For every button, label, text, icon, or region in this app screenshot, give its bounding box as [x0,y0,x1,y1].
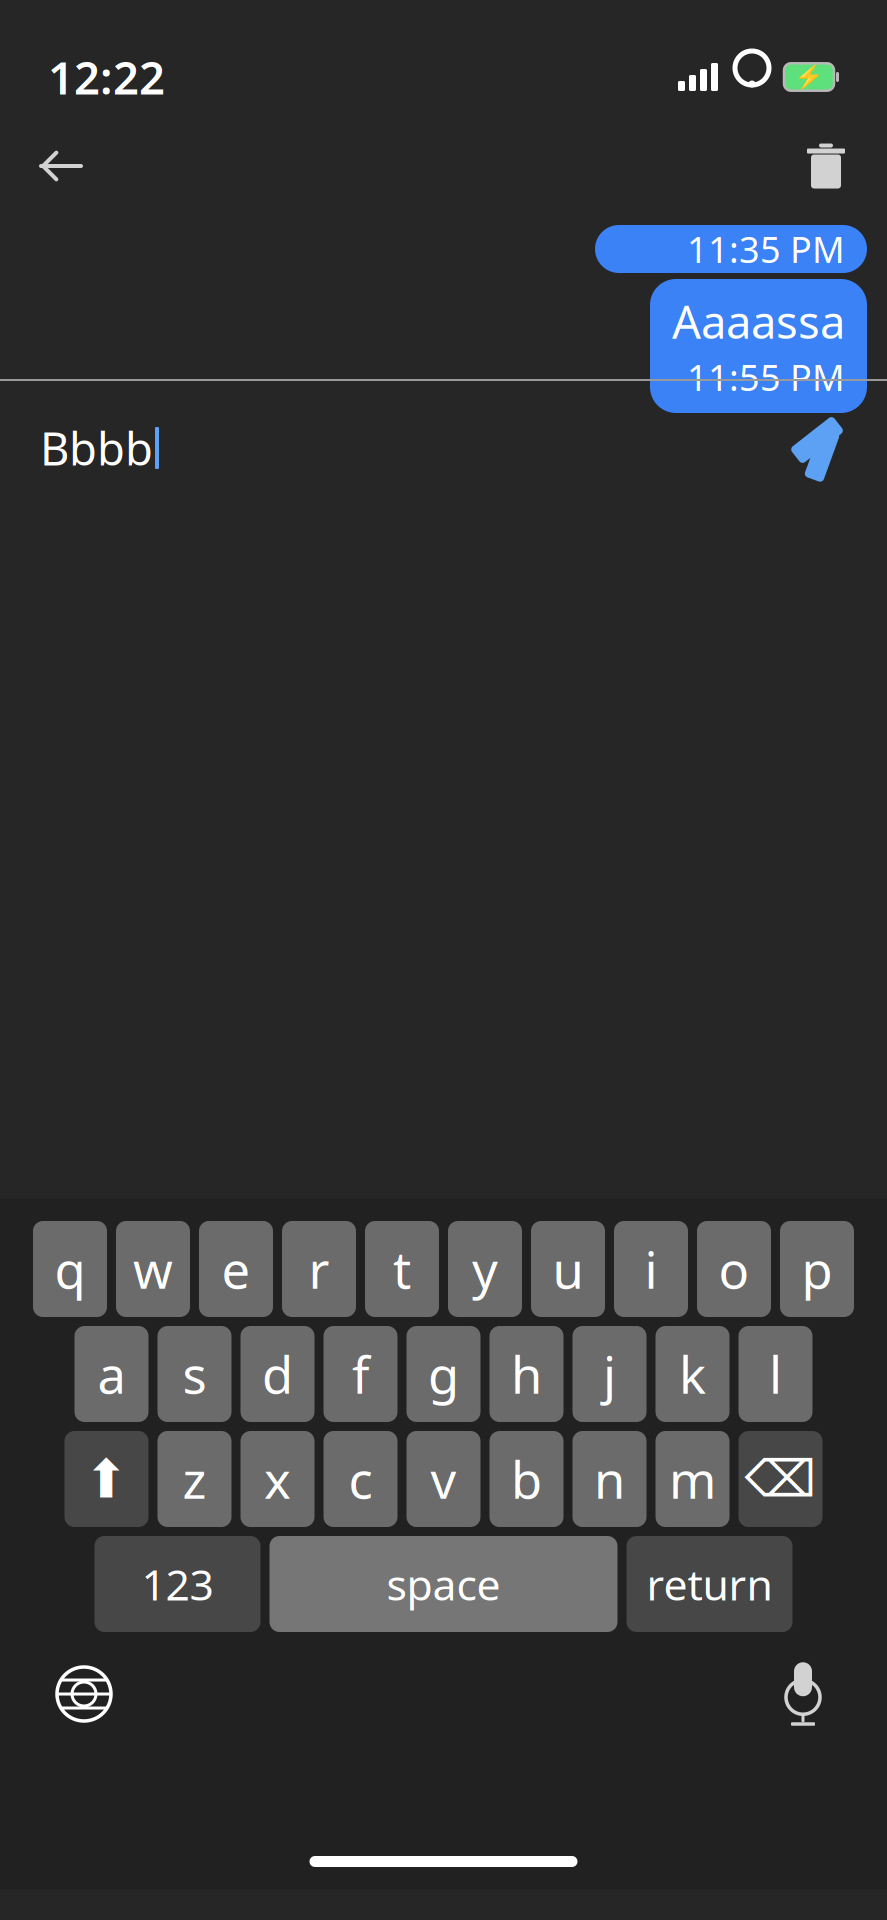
button[interactable]: m [655,1431,729,1527]
button[interactable]: return [626,1536,792,1632]
staticText: w [133,1235,173,1303]
button[interactable]: d [240,1326,314,1422]
button[interactable]: Delete [738,1431,822,1527]
button[interactable]: c [323,1431,397,1527]
staticText: return [646,1556,772,1612]
button[interactable]: p [780,1221,854,1317]
staticText: x [264,1445,291,1513]
staticText: a [97,1340,125,1408]
button[interactable]: w [116,1221,190,1317]
button[interactable]: Delete conversation [787,127,865,205]
staticText: v [430,1445,456,1513]
button[interactable]: r [282,1221,356,1317]
button[interactable]: Shift [64,1431,148,1527]
staticText: l [769,1340,782,1408]
button[interactable]: Next keyboard [40,1650,128,1738]
button[interactable]: Back [22,127,100,205]
staticText: b [511,1445,542,1513]
staticText: 12:22 [48,47,165,107]
staticText: y [472,1235,498,1303]
staticText: r [308,1235,329,1303]
staticText: k [679,1340,706,1408]
staticText: j [603,1340,616,1408]
staticText: i [644,1235,657,1303]
staticText: t [393,1235,411,1303]
button[interactable]: v [406,1431,480,1527]
staticText: n [594,1445,625,1513]
button[interactable]: x [240,1431,314,1527]
staticText: d [262,1340,293,1408]
button[interactable]: a [74,1326,148,1422]
button[interactable]: space [269,1536,617,1632]
button[interactable]: z [157,1431,231,1527]
staticText: g [428,1340,459,1408]
staticText: f [352,1340,369,1408]
staticText: 11:35 PM [687,225,845,273]
button[interactable]: t [365,1221,439,1317]
button[interactable]: q [33,1221,107,1317]
staticText: 123 [141,1556,213,1612]
staticText: m [669,1445,716,1513]
staticText: ⚡ [794,63,824,91]
staticText: 11:55 PM [687,353,845,401]
button[interactable]: b [489,1431,563,1527]
staticText: ⌫ [744,1450,816,1508]
staticText: s [182,1340,206,1408]
staticText: q [54,1235,85,1303]
button[interactable]: g [406,1326,480,1422]
button[interactable]: y [448,1221,522,1317]
staticText: h [511,1340,542,1408]
staticText: space [386,1556,500,1612]
button[interactable]: Send [775,403,865,493]
button[interactable]: f [323,1326,397,1422]
button[interactable]: 123 [94,1536,260,1632]
button[interactable]: s [157,1326,231,1422]
staticText: Bbbb [40,418,153,478]
button[interactable]: i [614,1221,688,1317]
button[interactable]: j [572,1326,646,1422]
staticText: e [221,1235,250,1303]
button[interactable]: Dictate [759,1650,847,1738]
staticText: u [552,1235,583,1303]
button[interactable]: h [489,1326,563,1422]
button[interactable]: o [697,1221,771,1317]
staticText: p [801,1235,832,1303]
staticText: o [718,1235,749,1303]
staticText: z [182,1445,206,1513]
button[interactable]: k [655,1326,729,1422]
button[interactable]: e [199,1221,273,1317]
button[interactable]: l [738,1326,812,1422]
staticText: c [348,1445,372,1513]
staticText: ⬆ [84,1449,129,1509]
staticText: Aaaassa [672,291,845,351]
button[interactable]: u [531,1221,605,1317]
button[interactable]: n [572,1431,646,1527]
